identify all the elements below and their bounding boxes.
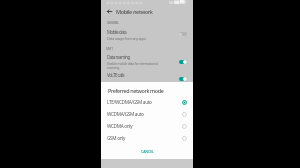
staticText: WCDMA/GSM auto — [107, 111, 182, 117]
staticText: Preferred network mode — [108, 87, 164, 94]
staticText: WCDMA only — [107, 123, 182, 129]
button[interactable]: LTE/WCDMA/GSM auto — [101, 96, 193, 108]
staticText: VoLTE calls — [107, 72, 125, 78]
button[interactable]: CANCEL — [136, 146, 158, 156]
button[interactable]: Switch on — [178, 58, 189, 66]
staticText: roaming — [107, 65, 120, 70]
button[interactable]: GSM only — [101, 132, 193, 144]
staticText: Mobile network — [116, 8, 153, 16]
staticText: Mobile data — [107, 29, 127, 35]
staticText: GSM only — [107, 135, 182, 141]
button[interactable]: WCDMA only — [101, 120, 193, 132]
button[interactable]: Switch off — [178, 30, 189, 38]
button[interactable]: WCDMA/GSM auto — [101, 108, 193, 120]
button[interactable]: Switch on — [178, 75, 189, 83]
staticText: GENERAL — [107, 21, 119, 25]
staticText: LTE/WCDMA/GSM auto — [107, 99, 182, 105]
staticText: Data usage from any apps — [107, 36, 146, 41]
staticText: SIM 1 — [106, 47, 113, 51]
button[interactable]: Back — [104, 6, 115, 17]
staticText: Data roaming — [107, 54, 130, 60]
staticText: CANCEL — [141, 149, 154, 154]
staticText: Enable mobile data for international — [107, 61, 158, 66]
